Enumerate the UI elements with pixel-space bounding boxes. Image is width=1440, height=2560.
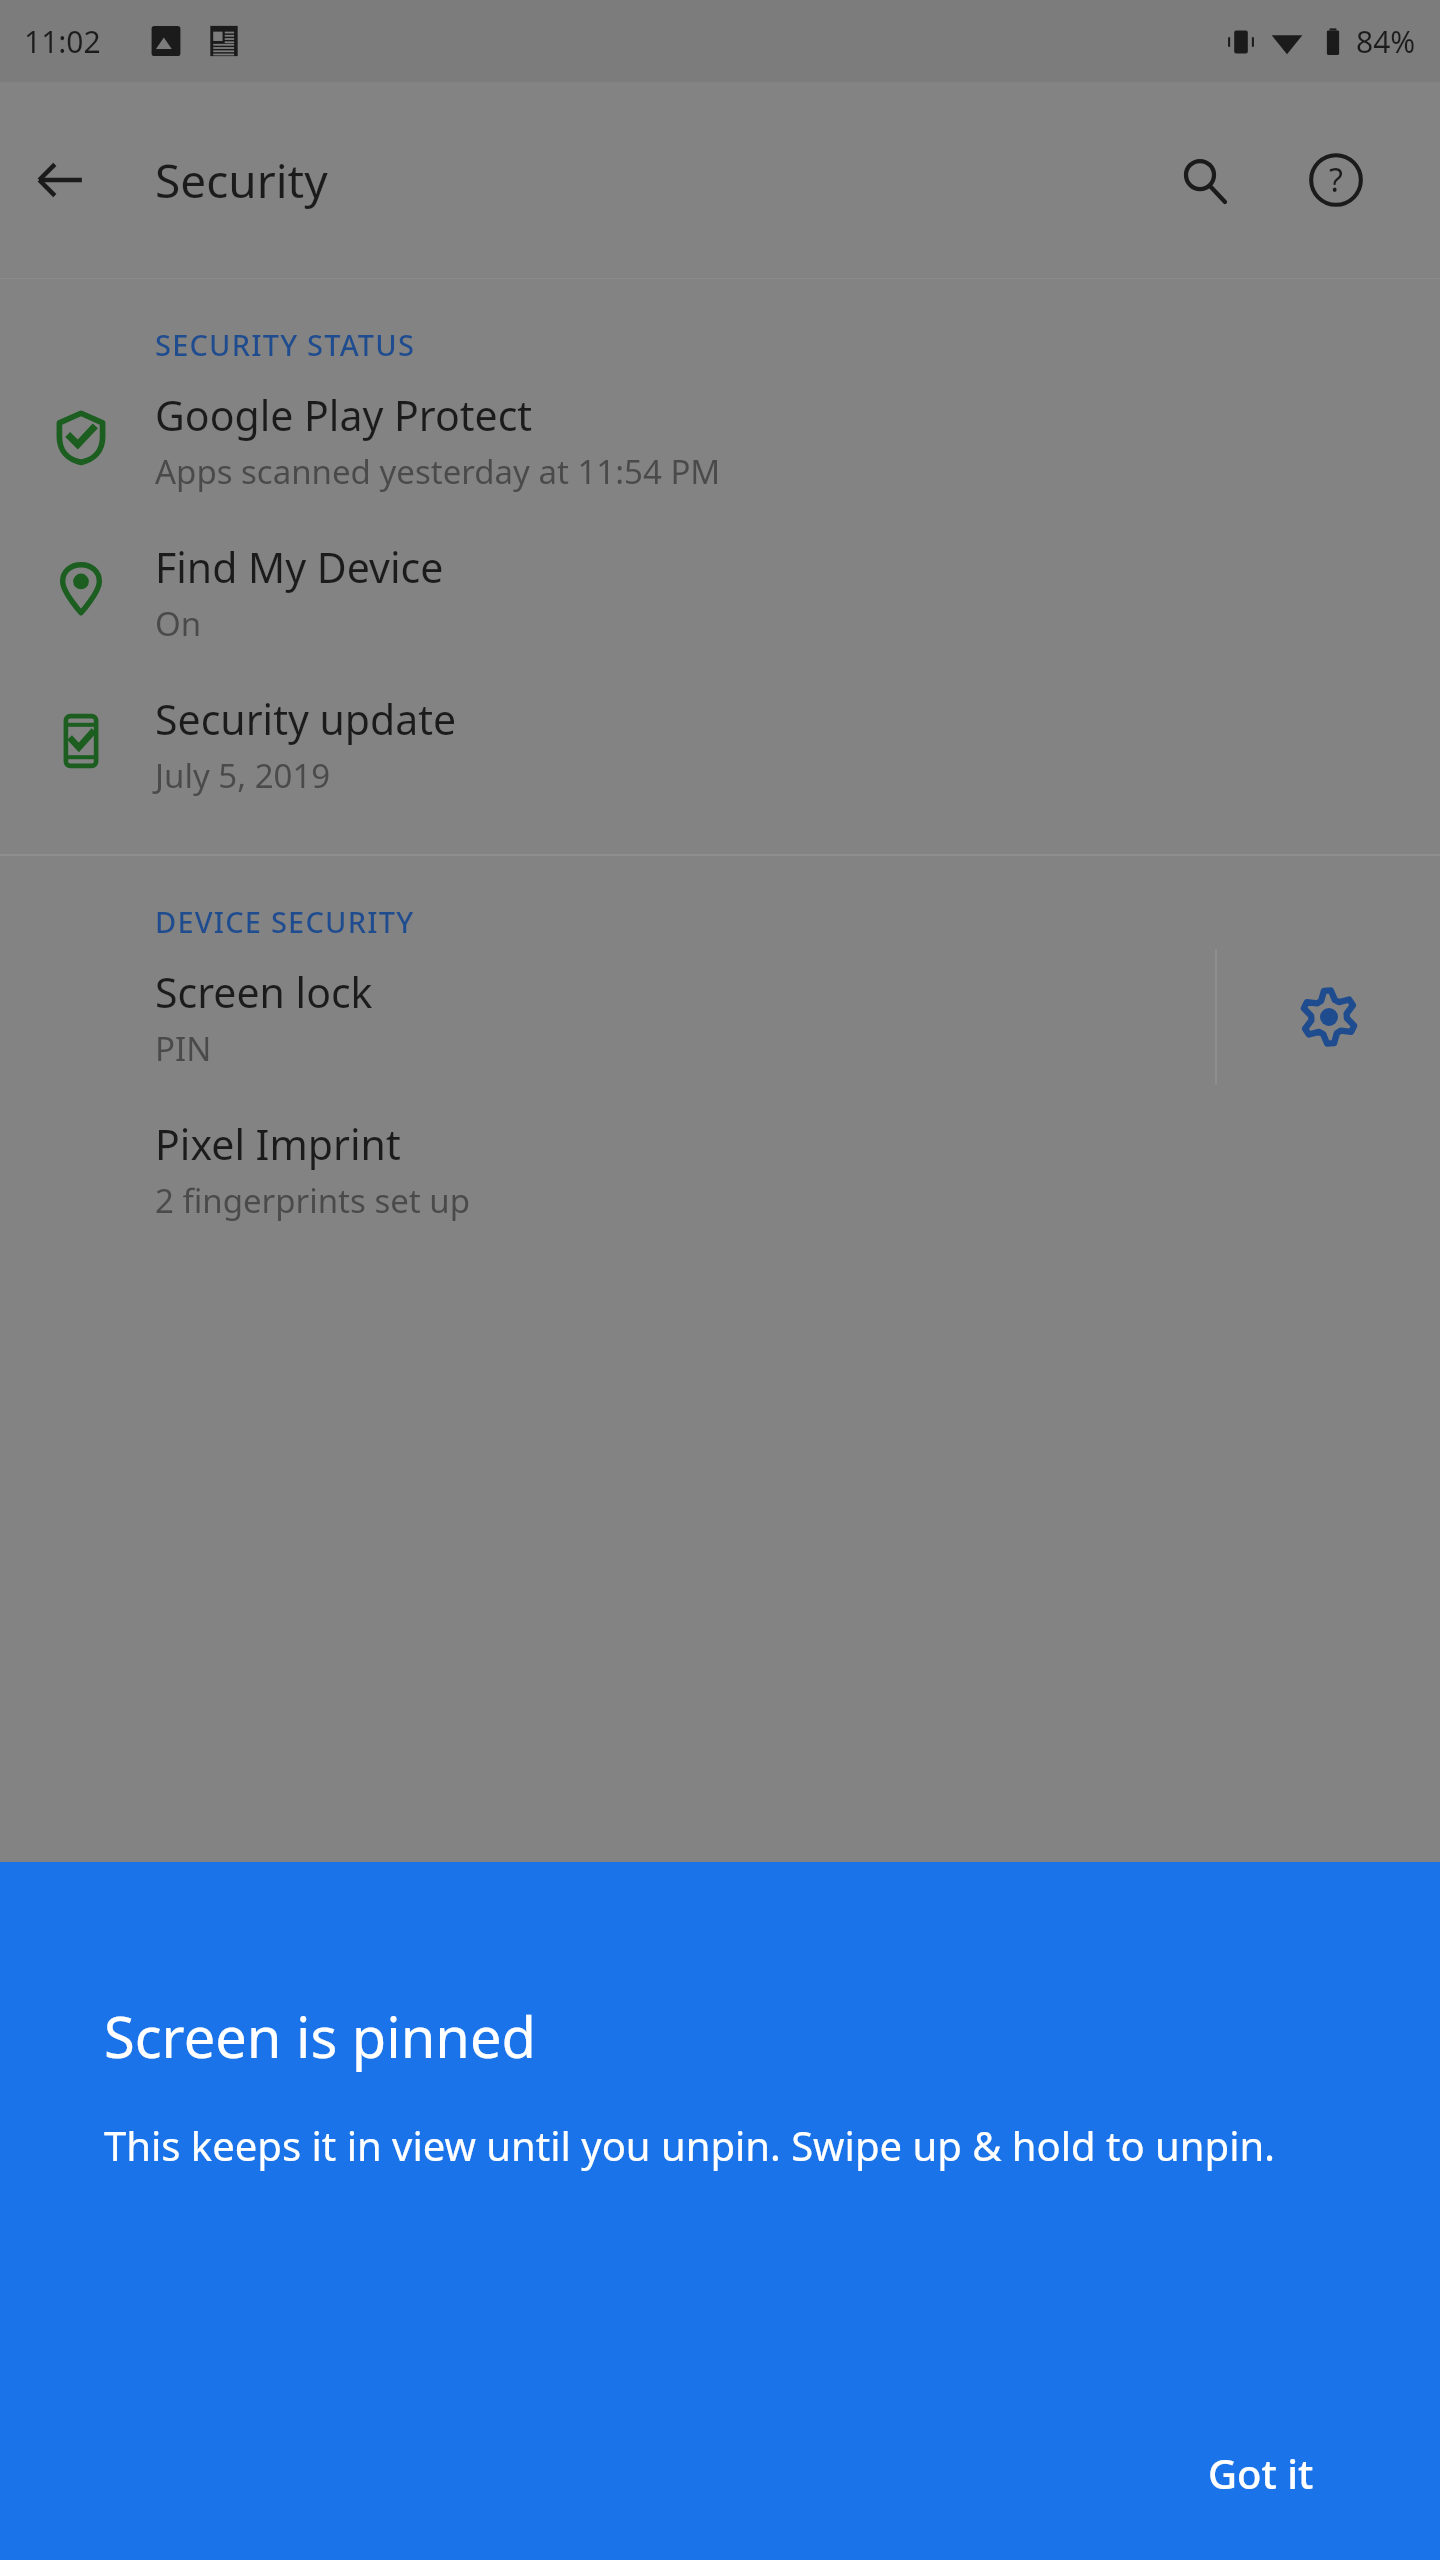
staticText: Screen lock xyxy=(155,964,373,1020)
staticText: 11:02 xyxy=(24,21,101,62)
staticText: July 5, 2019 xyxy=(155,753,331,798)
button[interactable]: Google Play Protect xyxy=(0,364,1440,516)
button[interactable]: Security update xyxy=(0,668,1440,820)
button[interactable]: Got it xyxy=(1186,2430,1336,2516)
staticText: SECURITY STATUS xyxy=(155,325,416,364)
staticText: PIN xyxy=(155,1026,212,1071)
staticText: Screen is pinned xyxy=(104,1998,536,2074)
staticText: Security xyxy=(155,149,328,212)
button[interactable]: Help xyxy=(1288,132,1384,228)
button[interactable]: Find My Device xyxy=(0,516,1440,668)
button[interactable]: Back xyxy=(20,140,100,220)
staticText: Security update xyxy=(155,691,457,747)
button[interactable]: Search xyxy=(1156,132,1252,228)
staticText: Google Play Protect xyxy=(155,387,533,443)
staticText: Apps scanned yesterday at 11:54 PM xyxy=(155,449,721,494)
staticText: 84% xyxy=(1356,21,1416,62)
staticText: This keeps it in view until you unpin. S… xyxy=(104,2118,1275,2172)
staticText: Got it xyxy=(1208,2446,1314,2500)
button[interactable]: Screen lock settings xyxy=(1217,941,1440,1093)
staticText: Pixel Imprint xyxy=(155,1116,401,1172)
staticText: 2 fingerprints set up xyxy=(155,1178,470,1223)
staticText: Find My Device xyxy=(155,539,444,595)
button[interactable]: Screen lock xyxy=(0,941,1215,1093)
staticText: DEVICE SECURITY xyxy=(155,902,415,941)
button[interactable]: Pixel Imprint xyxy=(0,1093,1440,1245)
staticText: On xyxy=(155,601,202,646)
staticText: ? xyxy=(1329,158,1343,202)
